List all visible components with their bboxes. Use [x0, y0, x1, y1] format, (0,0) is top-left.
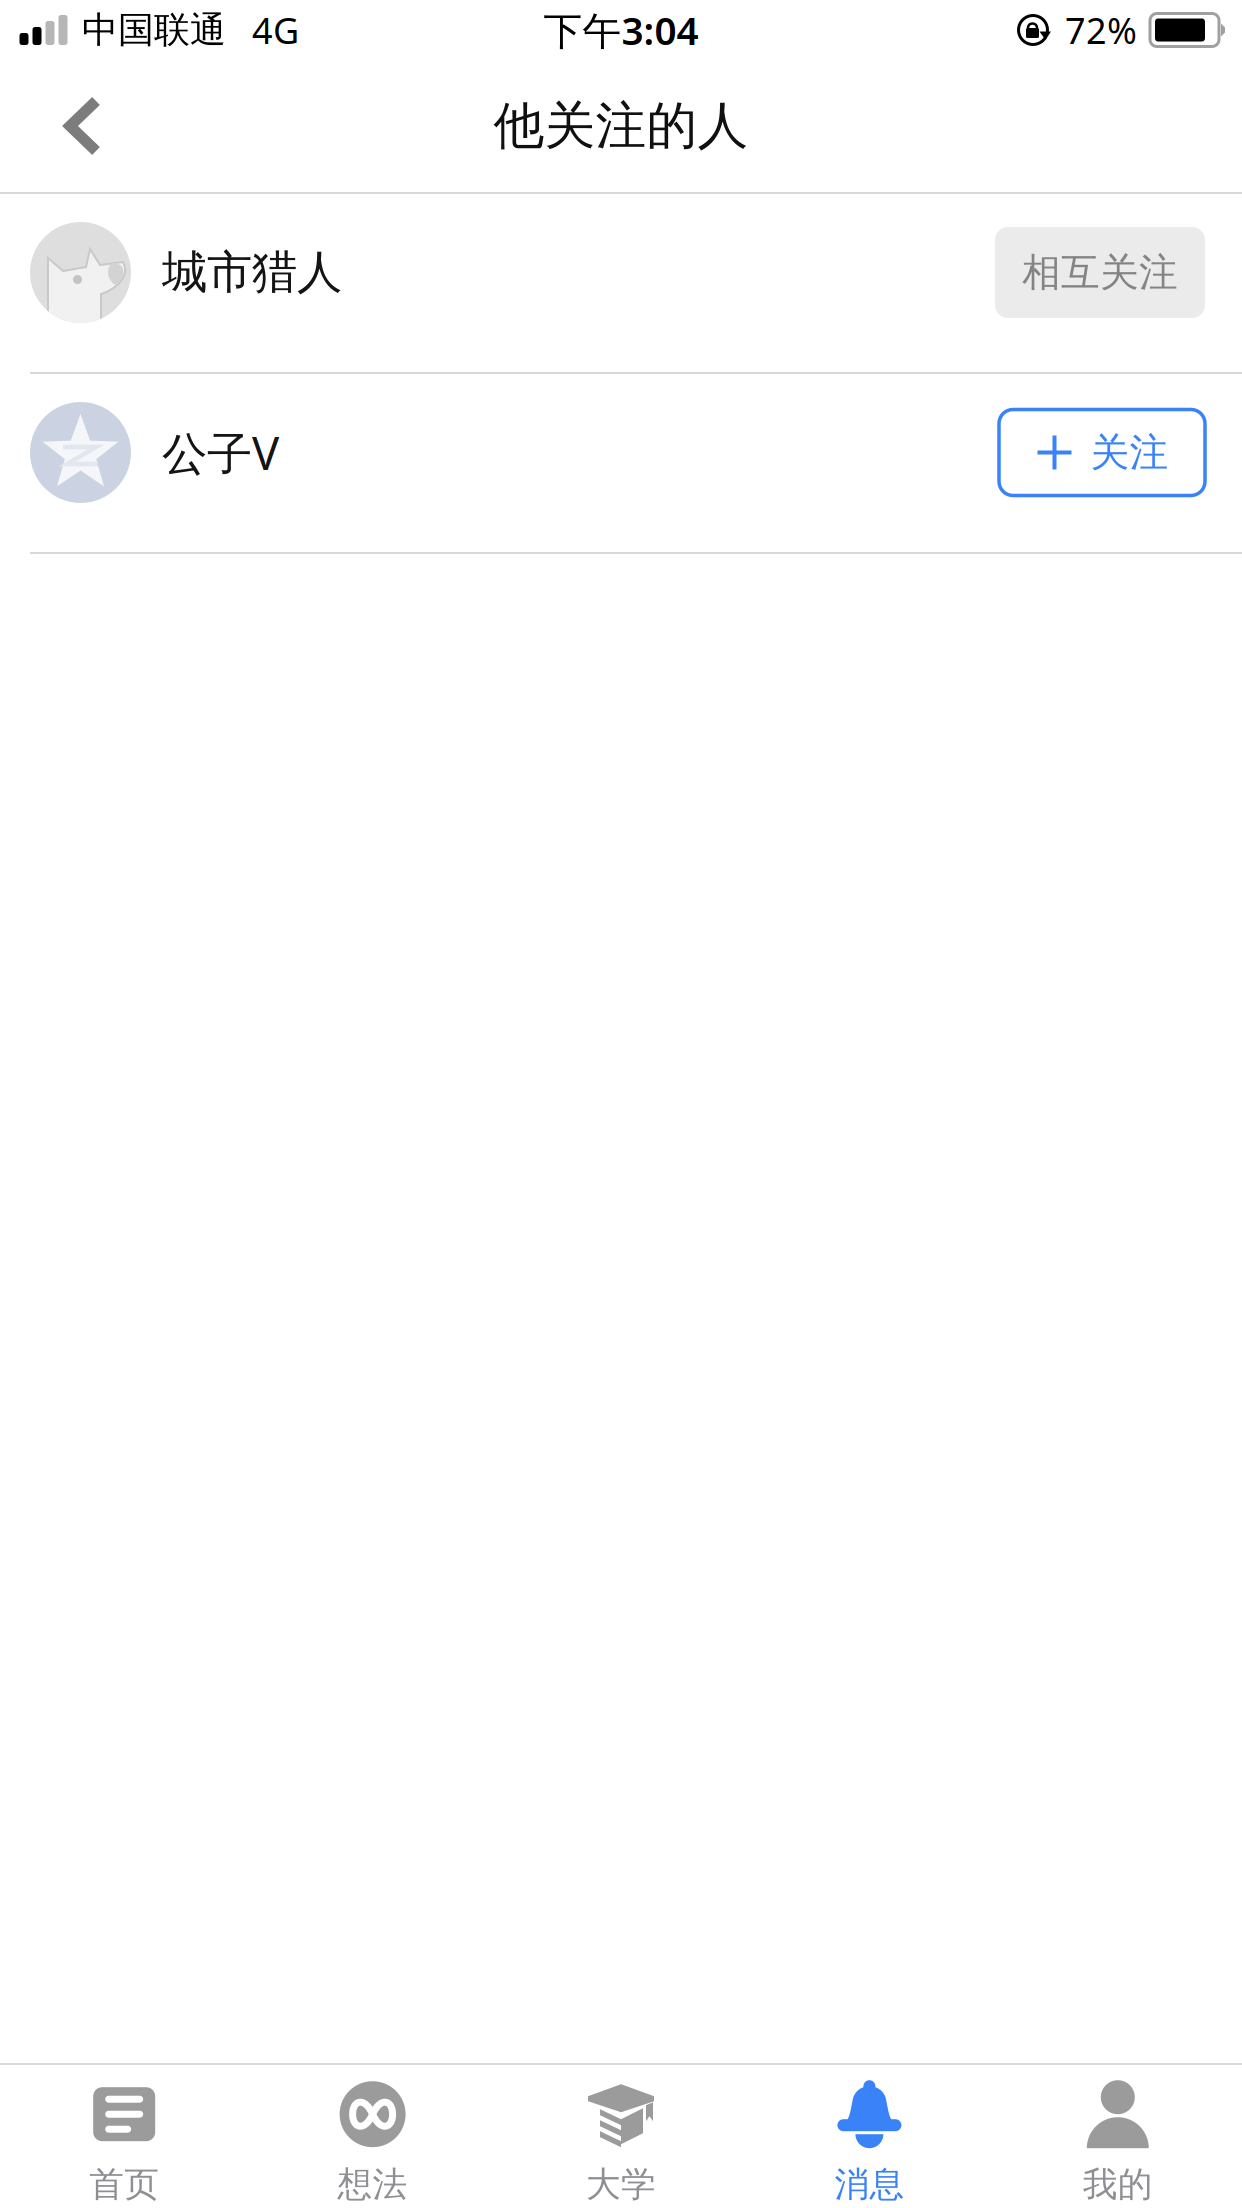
- staticText: 下午3:04: [543, 4, 698, 56]
- staticText: 想法: [338, 2163, 408, 2206]
- staticText: 我的: [1083, 2163, 1153, 2206]
- button[interactable]: 关注: [999, 409, 1206, 495]
- staticText: 消息: [834, 2163, 904, 2206]
- staticText: 公子V: [162, 422, 279, 483]
- button[interactable]: 首页: [0, 2058, 248, 2208]
- staticText: 72%: [1065, 6, 1137, 54]
- staticText: 大学: [586, 2163, 656, 2206]
- button[interactable]: 相互关注: [995, 227, 1206, 318]
- staticText: 首页: [89, 2163, 159, 2206]
- button[interactable]: 城市猎人: [0, 194, 1242, 372]
- button[interactable]: 公子V: [0, 374, 1242, 552]
- staticText: 关注: [1090, 429, 1168, 476]
- staticText: 城市猎人: [162, 245, 342, 300]
- button[interactable]: 大学: [497, 2058, 745, 2208]
- staticText: 4G: [252, 6, 299, 54]
- staticText: 相互关注: [1022, 249, 1178, 296]
- button[interactable]: 我的: [994, 2058, 1242, 2208]
- button[interactable]: Back: [0, 60, 123, 192]
- staticText: 中国联通: [82, 8, 226, 52]
- button[interactable]: 消息: [745, 2058, 994, 2208]
- button[interactable]: 想法: [248, 2058, 497, 2208]
- staticText: 他关注的人: [493, 95, 748, 157]
